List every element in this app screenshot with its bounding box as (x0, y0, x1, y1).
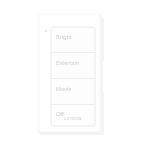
button[interactable]: Off (51, 105, 95, 126)
button[interactable]: Movie (51, 79, 95, 104)
staticText: Bright (56, 33, 72, 40)
button[interactable]: Entertain (51, 53, 95, 78)
button[interactable]: Bright (51, 27, 95, 52)
staticText: Off (56, 110, 64, 117)
staticText: Movie (56, 85, 72, 92)
staticText: Entertain (56, 59, 80, 66)
staticText: LUTRON (64, 116, 82, 121)
